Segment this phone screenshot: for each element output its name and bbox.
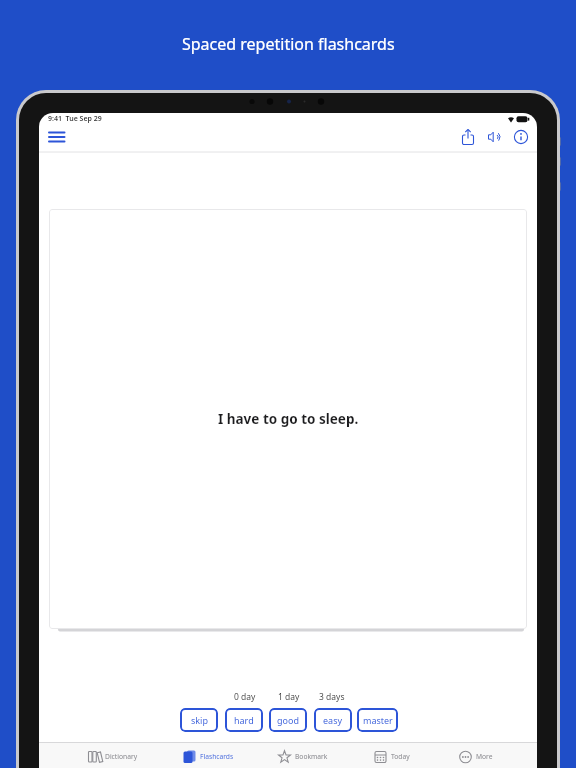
- button[interactable]: [484, 127, 504, 147]
- staticText: 1 day: [278, 691, 300, 703]
- button[interactable]: easy: [314, 708, 352, 732]
- staticText: I have to go to sleep.: [218, 410, 359, 428]
- button[interactable]: skip: [180, 708, 218, 732]
- button[interactable]: [47, 127, 67, 147]
- staticText: Today: [391, 752, 410, 761]
- staticText: hard: [234, 714, 254, 726]
- button[interactable]: Dictionary: [88, 749, 138, 763]
- staticText: skip: [191, 714, 208, 726]
- button[interactable]: More: [459, 749, 493, 763]
- staticText: easy: [323, 714, 343, 726]
- staticText: good: [277, 714, 299, 726]
- button[interactable]: [458, 127, 478, 147]
- button[interactable]: good: [269, 708, 307, 732]
- button[interactable]: Flashcards: [183, 749, 234, 763]
- staticText: 9:41 Tue Sep 29: [48, 114, 102, 124]
- button[interactable]: Today: [374, 749, 410, 763]
- button[interactable]: I have to go to sleep.: [49, 209, 527, 629]
- staticText: Dictionary: [105, 752, 138, 761]
- staticText: Bookmark: [295, 752, 328, 761]
- button[interactable]: master: [357, 708, 398, 732]
- button[interactable]: Bookmark: [278, 749, 328, 763]
- button[interactable]: hard: [225, 708, 263, 732]
- staticText: Flashcards: [200, 752, 234, 761]
- staticText: Spaced repetition flashcards: [182, 33, 395, 55]
- staticText: More: [476, 752, 493, 761]
- button[interactable]: [511, 127, 531, 147]
- staticText: master: [363, 714, 393, 726]
- staticText: 3 days: [319, 691, 345, 703]
- staticText: 0 day: [234, 691, 256, 703]
